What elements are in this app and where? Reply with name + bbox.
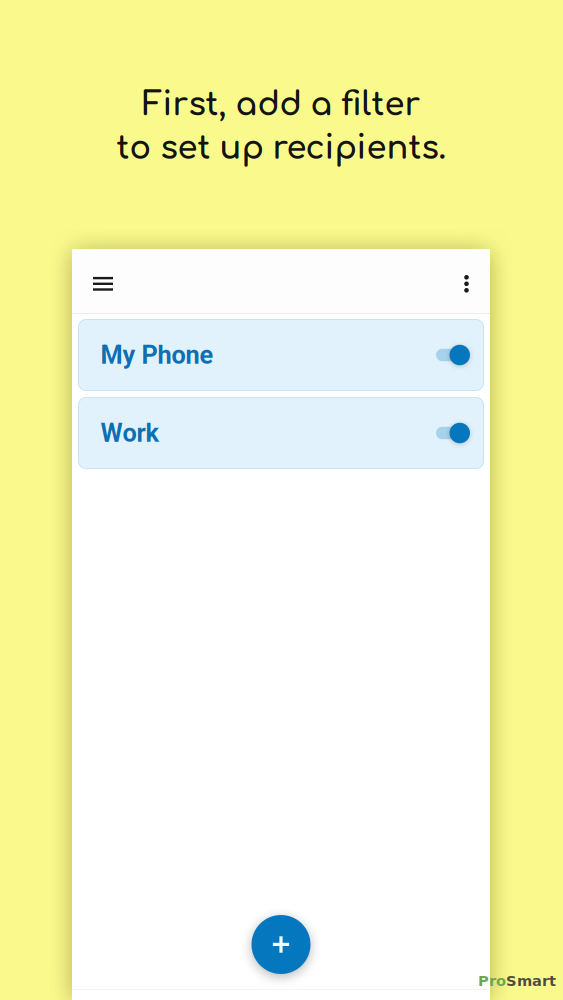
staticText: First, add a filter [142, 87, 420, 123]
staticText: to set up recipients. [116, 131, 446, 166]
staticText: My Phone [100, 340, 213, 370]
button[interactable]: My Phone [78, 319, 483, 390]
button[interactable]: More options [444, 259, 488, 303]
staticText: Pro [478, 972, 506, 990]
staticText: Work [100, 418, 159, 448]
button[interactable]: Menu [81, 259, 125, 303]
button[interactable]: Add filter [251, 915, 310, 974]
staticText: Smart [506, 972, 556, 990]
button[interactable]: Work [78, 397, 483, 468]
